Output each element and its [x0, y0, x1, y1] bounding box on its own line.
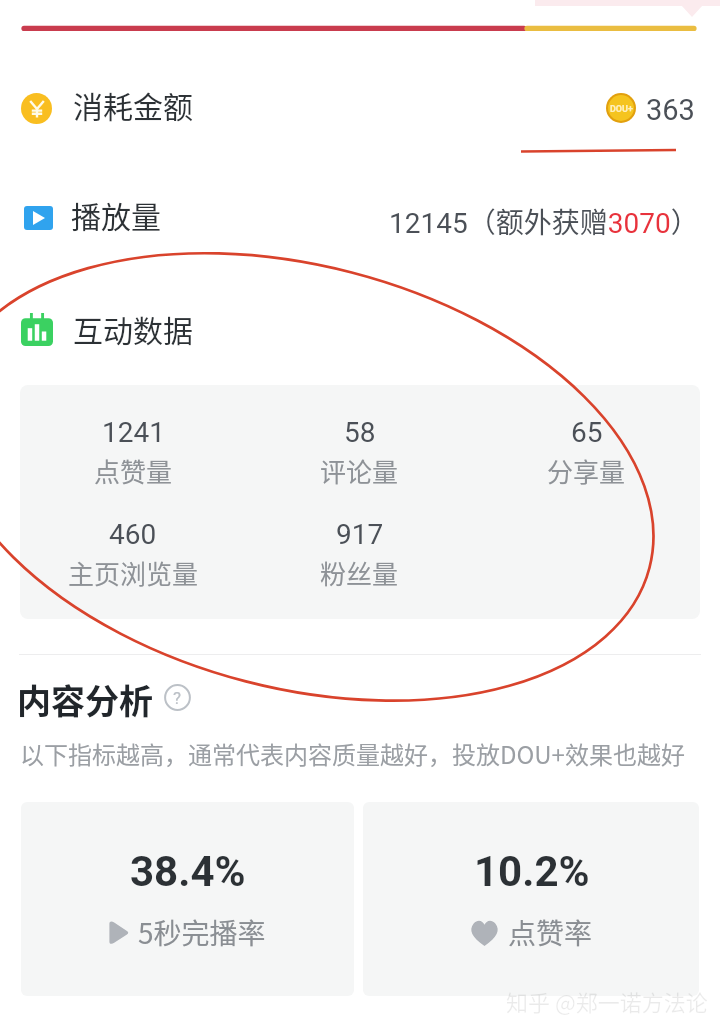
other: DOU+ coins — [606, 93, 636, 123]
staticText: 以下指标越高，通常代表内容质量越好，投放DOU+效果也越好 — [20, 736, 685, 771]
button[interactable]: 38.4% — [21, 802, 354, 996]
staticText: 知乎 @郑一诺方法论 — [506, 985, 708, 1017]
staticText: 460 — [109, 518, 157, 551]
button[interactable]: Plays — [24, 196, 702, 240]
button[interactable]: Spend amount — [21, 86, 699, 130]
staticText: 消耗金额 — [73, 83, 193, 126]
staticText: 363 — [646, 93, 695, 127]
staticText: 917 — [336, 518, 384, 551]
button[interactable]: 内容分析 — [17, 675, 191, 719]
other: Spend amount — [21, 93, 52, 124]
staticText: DOU+ — [610, 104, 633, 115]
staticText: 58 — [344, 416, 376, 449]
staticText: 粉丝量 — [320, 554, 399, 592]
staticText: 5秒完播率 — [138, 912, 266, 953]
staticText: 1241 — [102, 416, 165, 449]
button[interactable]: 460 — [20, 518, 246, 592]
button[interactable]: 1241 — [20, 416, 246, 490]
button[interactable]: 65 — [473, 416, 700, 490]
button[interactable]: 917 — [246, 518, 473, 592]
button[interactable]: Interaction data — [21, 307, 421, 351]
other: Help — [164, 684, 191, 711]
staticText: 主页浏览量 — [68, 554, 199, 592]
staticText: 内容分析 — [17, 675, 153, 719]
staticText: 播放量 — [71, 193, 161, 236]
other: Interaction data — [21, 313, 53, 346]
staticText: ? — [173, 688, 182, 708]
staticText: 65 — [571, 416, 603, 449]
staticText: 评论量 — [320, 452, 399, 490]
staticText: 12145（额外获赠3070） — [389, 201, 699, 242]
staticText: 点赞率 — [508, 912, 593, 953]
staticText: 分享量 — [547, 452, 626, 490]
staticText: 38.4% — [130, 847, 246, 896]
button[interactable]: 10.2% — [363, 802, 699, 996]
other: Plays — [24, 206, 53, 230]
staticText: 互动数据 — [73, 307, 193, 350]
staticText: 10.2% — [474, 847, 590, 896]
button[interactable]: 58 — [246, 416, 473, 490]
staticText: 点赞量 — [94, 452, 173, 490]
